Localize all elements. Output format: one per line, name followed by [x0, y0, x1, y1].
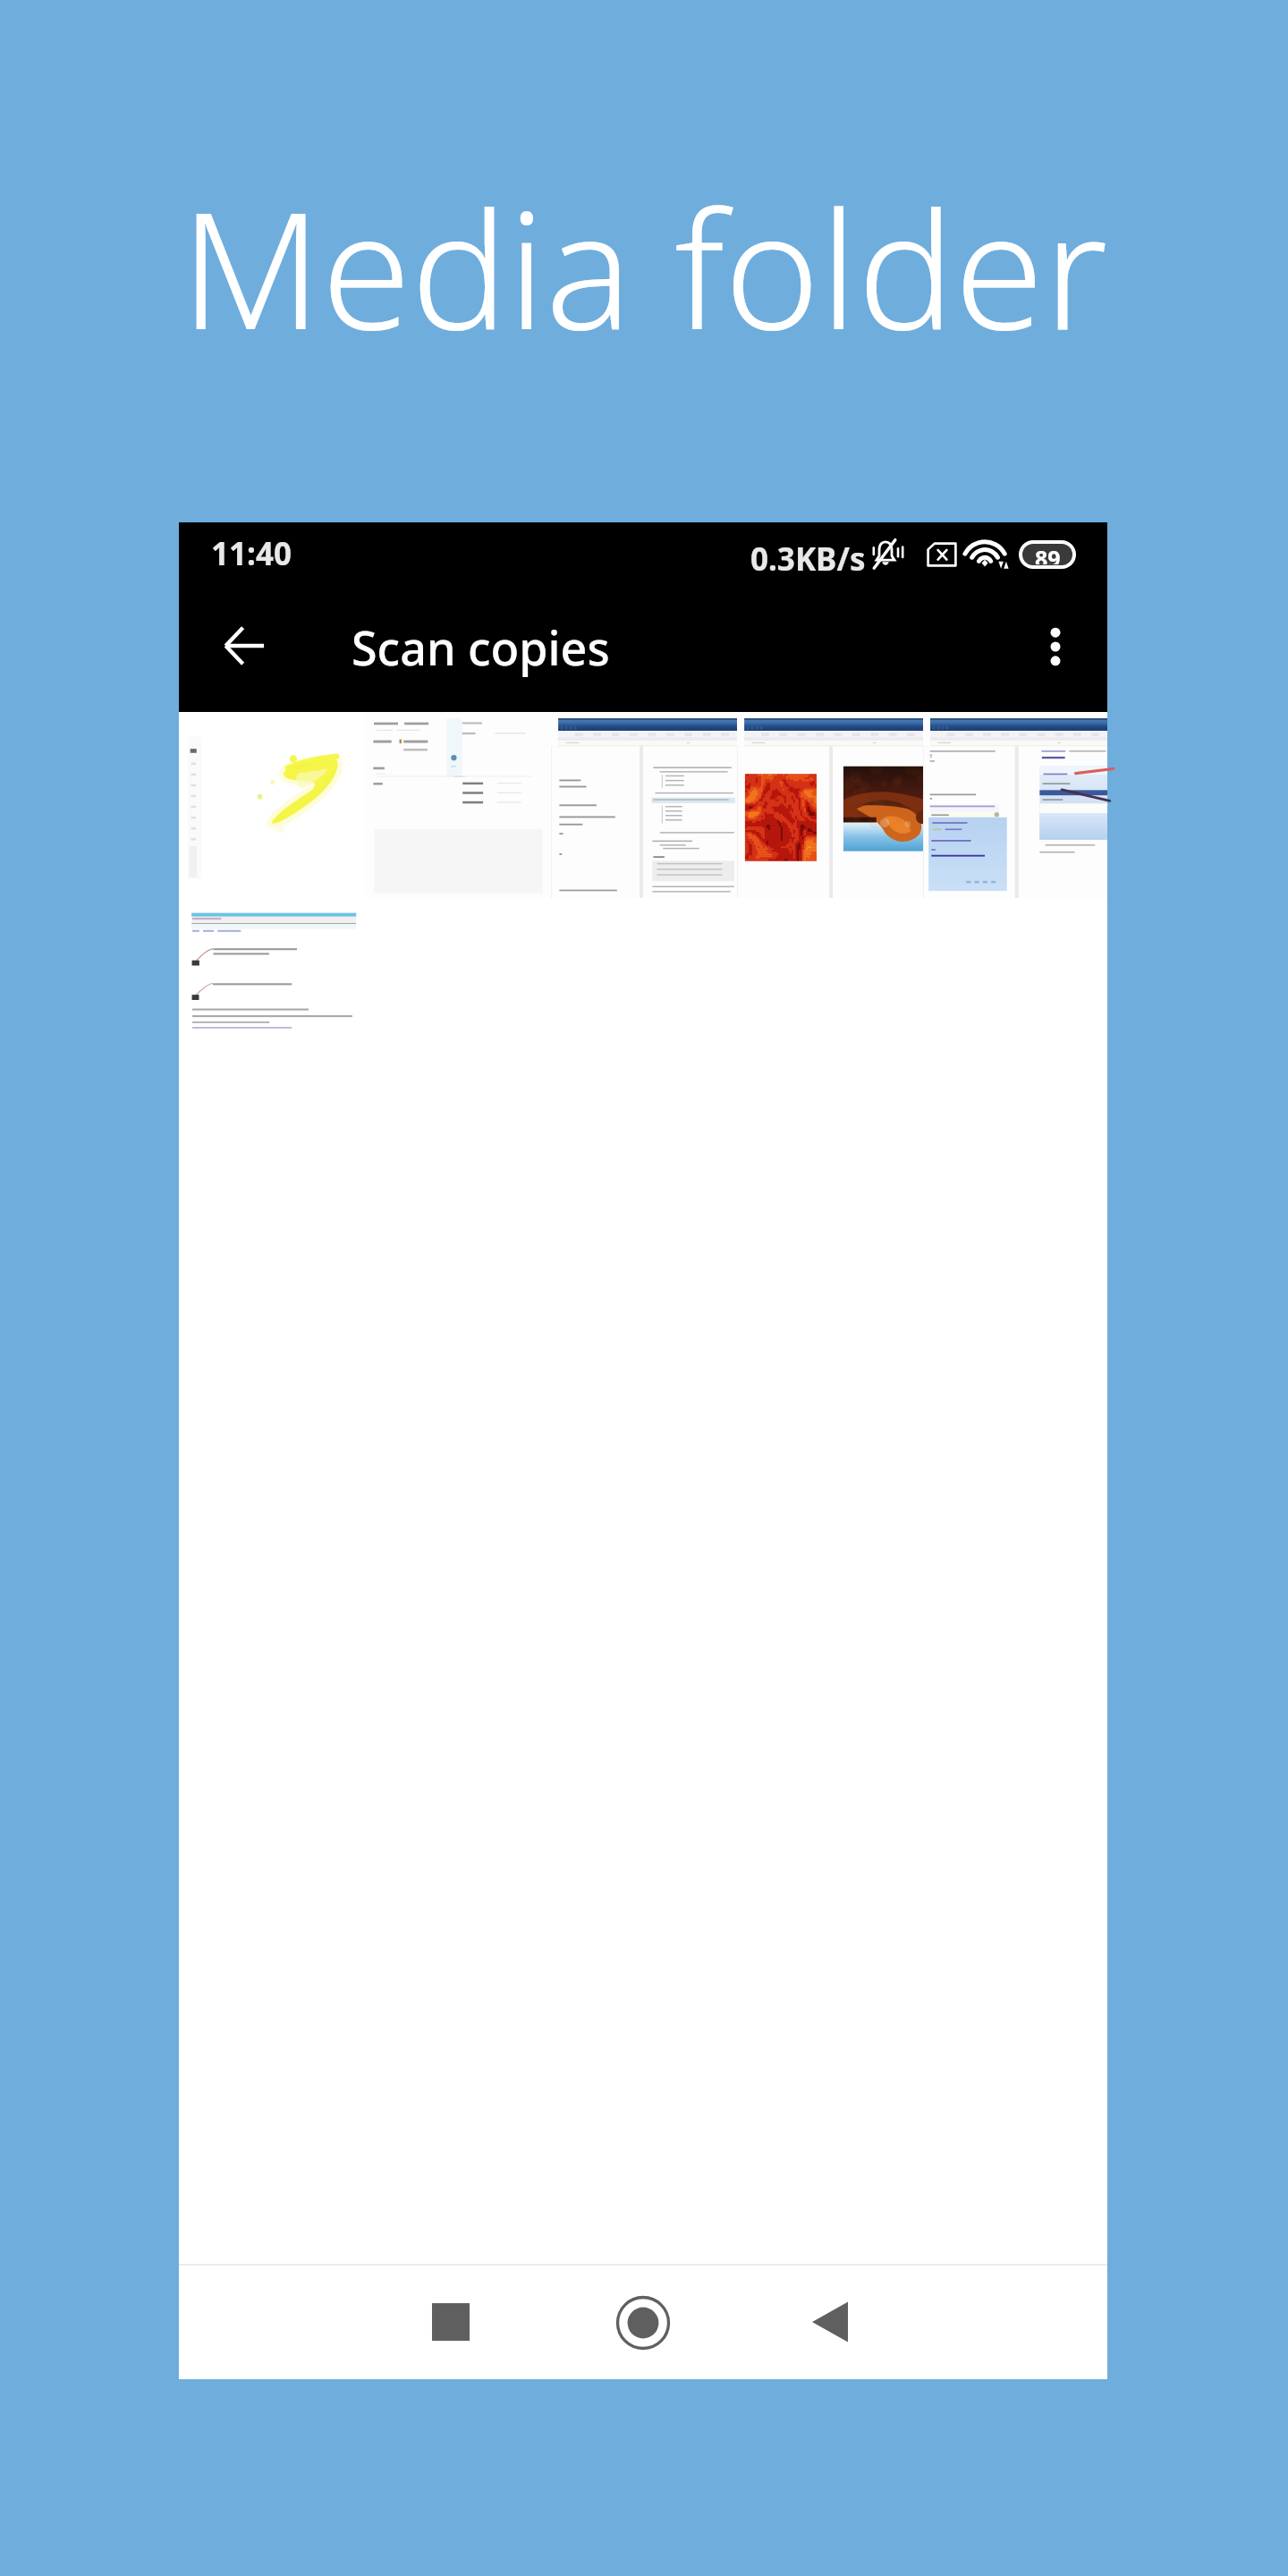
button[interactable]: Scan copy 6 [179, 898, 365, 1084]
button[interactable]: Scan copy 3 [551, 712, 737, 898]
button[interactable]: Back [784, 2274, 880, 2370]
button[interactable]: Scan copy 5 [923, 712, 1107, 898]
button[interactable]: Home [595, 2275, 691, 2371]
button[interactable]: Scan copy 4 [737, 712, 923, 898]
button[interactable]: More options [1009, 600, 1102, 693]
button[interactable]: Scan copy 1 [179, 712, 365, 898]
staticText: Scan copies [352, 615, 610, 679]
staticText: 0.3KB/s [750, 538, 866, 580]
button[interactable]: Recents [402, 2274, 499, 2370]
staticText: 89 [1035, 544, 1061, 564]
button[interactable]: Scan copy 2 [365, 712, 551, 898]
button[interactable]: Back [198, 599, 291, 692]
staticText: 11:40 [211, 532, 292, 575]
staticText: Media folder [0, 157, 1288, 377]
